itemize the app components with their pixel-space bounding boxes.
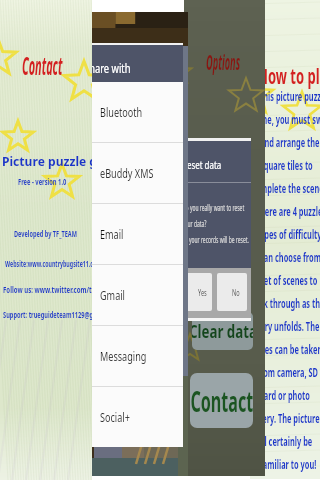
staticText: Free - version 1.0 bbox=[18, 175, 67, 187]
staticText: square tiles to bbox=[260, 156, 313, 174]
staticText: Gmail bbox=[100, 286, 125, 304]
staticText: How to play bbox=[258, 62, 320, 91]
button[interactable]: Messaging bbox=[82, 326, 183, 386]
staticText: this picture puzzle bbox=[260, 87, 320, 105]
button[interactable]: How to play bbox=[250, 0, 320, 479]
button[interactable]: Options bbox=[184, 0, 265, 476]
staticText: card or photo bbox=[260, 386, 310, 404]
button[interactable]: Bluetooth bbox=[82, 82, 183, 142]
staticText: ges can be taken bbox=[260, 340, 320, 358]
staticText: Contact bbox=[190, 381, 253, 420]
staticText: Options bbox=[206, 46, 240, 75]
staticText: can choose from, bbox=[260, 248, 320, 266]
staticText: Email bbox=[100, 225, 124, 243]
staticText: Social+ bbox=[100, 408, 130, 426]
button[interactable]: Contact bbox=[0, 0, 92, 480]
staticText: me, you must swap bbox=[260, 110, 320, 128]
staticText: lery. The pictures bbox=[260, 409, 320, 427]
button[interactable]: Gmail bbox=[82, 265, 183, 325]
staticText: ypes of difficulty bbox=[260, 225, 320, 243]
staticText: No bbox=[232, 286, 240, 298]
staticText: Yes bbox=[198, 286, 207, 298]
button[interactable]: No bbox=[217, 273, 247, 311]
button[interactable]: Clear data bbox=[192, 312, 253, 350]
staticText: your data? bbox=[184, 217, 207, 229]
staticText: and arrange the bbox=[260, 133, 320, 151]
button[interactable]: eBuddy XMS bbox=[82, 143, 183, 203]
staticText: rom camera, SD bbox=[260, 363, 318, 381]
staticText: eBuddy XMS bbox=[100, 164, 154, 182]
staticText: Bluetooth bbox=[100, 103, 143, 121]
staticText: Website:www.countrybugsite11.com bbox=[5, 258, 92, 269]
button[interactable]: Contact bbox=[190, 373, 253, 428]
staticText: Picture puzzle game bbox=[2, 152, 92, 170]
staticText: Do you really want to reset bbox=[184, 201, 245, 213]
staticText: Reset data bbox=[184, 157, 222, 172]
staticText: set of scenes to bbox=[260, 271, 318, 289]
staticText: Developed by TF_TEAM bbox=[14, 227, 77, 239]
staticText: Messaging bbox=[100, 347, 147, 365]
staticText: mplete the scene. bbox=[260, 179, 320, 197]
staticText: All your records will be reset. bbox=[184, 233, 249, 245]
staticText: familiar to you! bbox=[260, 455, 316, 473]
staticText: Clear data bbox=[192, 319, 253, 344]
staticText: Share with bbox=[84, 59, 131, 77]
staticText: Support: trueguideteam1129@gmail.com bbox=[3, 309, 92, 320]
staticText: rk through as the bbox=[260, 294, 320, 312]
staticText: here are 4 puzzle bbox=[260, 202, 320, 220]
button[interactable]: Yes bbox=[184, 273, 212, 311]
button[interactable]: Email bbox=[82, 204, 183, 264]
staticText: Follow us: www.twitter.com/tf_team1129 bbox=[3, 284, 92, 295]
button[interactable]: Social+ bbox=[82, 387, 183, 447]
staticText: ory unfolds. The bbox=[260, 317, 320, 335]
staticText: Contact bbox=[22, 50, 63, 83]
staticText: ill certainly be bbox=[260, 432, 312, 450]
